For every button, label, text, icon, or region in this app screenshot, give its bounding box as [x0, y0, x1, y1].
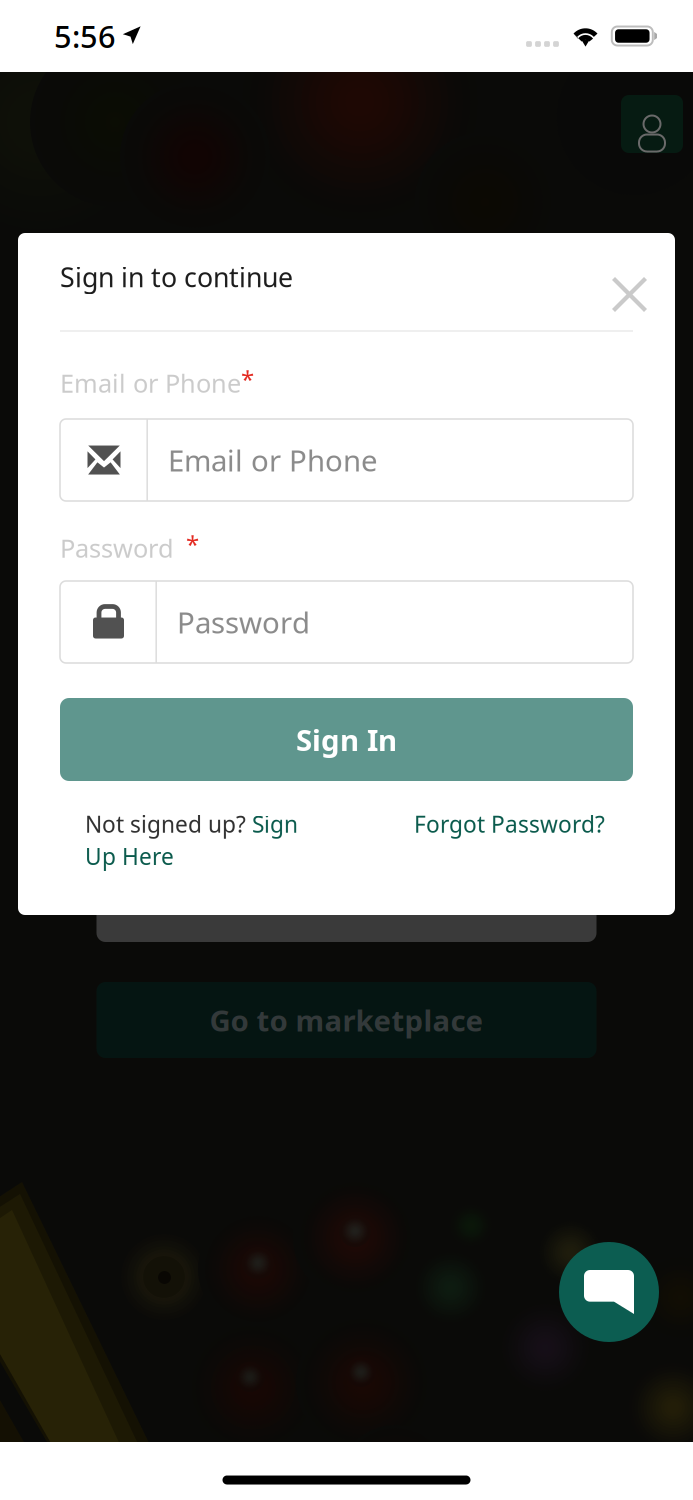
button[interactable]: Up Here [85, 841, 174, 871]
staticText: * [241, 363, 254, 395]
button[interactable]: Sign [252, 809, 298, 839]
staticText: Sign in to continue [60, 259, 293, 295]
staticText: * [174, 528, 199, 560]
button[interactable]: Go to marketplace [96, 982, 596, 1058]
button[interactable]: Sign In [60, 698, 633, 781]
staticText: 5:56 [54, 16, 116, 56]
button[interactable]: Forgot Password? [414, 809, 605, 839]
staticText: Go to marketplace [209, 1000, 483, 1039]
staticText: Sign [252, 809, 298, 839]
button[interactable]: Close [604, 269, 655, 319]
button[interactable]: Account [621, 95, 683, 153]
staticText: Email or Phone [168, 440, 378, 479]
staticText: Not signed up? [85, 809, 252, 839]
staticText: Password [60, 531, 174, 565]
staticText: Password [177, 602, 310, 641]
staticText: Forgot Password? [414, 809, 605, 839]
staticText: Sign In [296, 720, 397, 759]
button[interactable]: Chat [559, 1242, 659, 1342]
staticText: Up Here [85, 841, 174, 871]
staticText: Email or Phone [60, 366, 241, 400]
